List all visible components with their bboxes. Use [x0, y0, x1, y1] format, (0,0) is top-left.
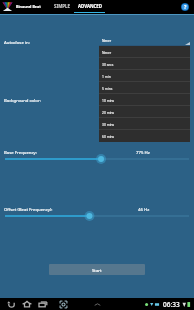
staticText: ADVANCED	[78, 3, 102, 9]
button[interactable]: SIMPLE	[50, 0, 74, 13]
button[interactable]: 1 min	[99, 70, 190, 82]
button[interactable]: Recents	[37, 298, 49, 310]
staticText: 775 Hz	[136, 149, 150, 155]
button[interactable]	[5, 154, 189, 164]
staticText: 30 secs	[102, 62, 114, 66]
staticText: SIMPLE	[54, 3, 70, 9]
staticText: Start	[92, 267, 102, 273]
button[interactable]: ADVANCED	[74, 0, 105, 13]
staticText: Binaural Beat	[16, 4, 41, 9]
staticText: 06:33	[163, 300, 180, 309]
staticText: 10 mins	[102, 98, 115, 102]
button[interactable]: Start	[49, 264, 145, 275]
button[interactable]: Back	[5, 298, 17, 310]
button[interactable]: 20 mins	[99, 106, 190, 118]
button[interactable]: 60 mins	[99, 130, 190, 142]
staticText: 46 Hz	[138, 206, 150, 212]
button[interactable]: Never	[99, 46, 190, 58]
button[interactable]: 10 mins	[99, 94, 190, 106]
button[interactable]: 5 mins	[99, 82, 190, 94]
button[interactable]: Screenshot	[57, 298, 69, 310]
staticText: 5 mins	[102, 86, 113, 90]
staticText: 20 mins	[102, 110, 115, 114]
staticText: 30 mins	[102, 122, 115, 126]
button[interactable]: Never	[99, 33, 190, 46]
staticText: ?	[184, 4, 187, 11]
staticText: 60 mins	[102, 134, 115, 138]
staticText: Autoclose in:	[4, 39, 30, 45]
staticText: Background color:	[4, 97, 41, 103]
staticText: Never	[102, 38, 112, 42]
button[interactable]: Home	[21, 298, 33, 310]
staticText: Offset (Beat Frequency):	[4, 206, 53, 212]
staticText: Never	[102, 50, 112, 54]
button[interactable]: Help	[178, 0, 191, 13]
button[interactable]: 30 secs	[99, 58, 190, 70]
staticText: Base Frequency:	[4, 149, 37, 155]
button[interactable]: Notifications	[93, 300, 102, 309]
button[interactable]	[5, 211, 189, 221]
button[interactable]: 30 mins	[99, 118, 190, 130]
staticText: 1 min	[102, 74, 111, 78]
